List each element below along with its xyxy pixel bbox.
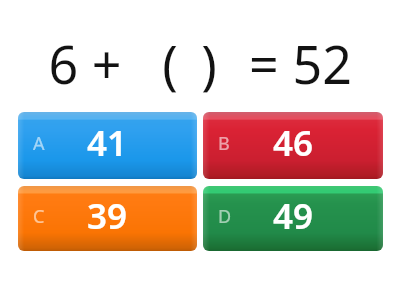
staticText: A bbox=[33, 131, 45, 156]
staticText: 49 bbox=[273, 192, 314, 240]
button[interactable]: D bbox=[203, 186, 383, 251]
staticText: ) bbox=[201, 28, 217, 99]
staticText: B bbox=[218, 131, 230, 156]
staticText: = 52 bbox=[249, 28, 352, 99]
staticText: 46 bbox=[273, 119, 314, 167]
button[interactable]: A bbox=[18, 112, 197, 179]
staticText: 41 bbox=[87, 119, 128, 167]
staticText: 39 bbox=[87, 192, 128, 240]
staticText: C bbox=[33, 204, 45, 229]
button[interactable]: B bbox=[203, 112, 383, 179]
button[interactable]: C bbox=[18, 186, 197, 251]
staticText: D bbox=[218, 204, 232, 229]
staticText: 6 + bbox=[48, 28, 122, 99]
staticText: ( bbox=[162, 28, 178, 99]
